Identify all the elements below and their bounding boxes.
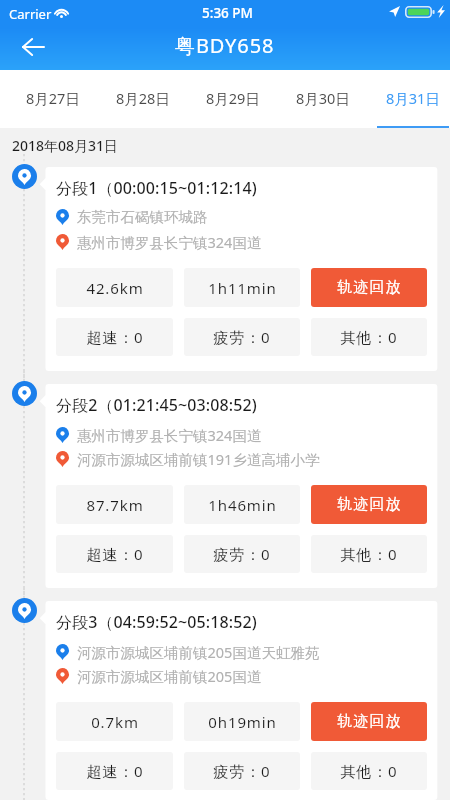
staticText: 其他：0 (340, 327, 398, 347)
staticText: 分段1（00:00:15~01:12:14) (56, 177, 257, 199)
staticText: 轨迹回放 (337, 495, 402, 514)
button[interactable]: 超速：0 (56, 752, 173, 790)
staticText: 2018年08月31日 (12, 136, 119, 155)
staticText: 超速：0 (86, 761, 144, 781)
button[interactable]: 8月31日 (368, 70, 450, 128)
button[interactable]: 其他：0 (311, 535, 427, 573)
staticText: 超速：0 (86, 544, 144, 564)
staticText: 惠州市博罗县长宁镇324国道 (77, 425, 262, 445)
staticText: Carrier (9, 5, 52, 23)
staticText: 河源市源城区埔前镇205国道天虹雅苑 (77, 642, 320, 662)
button[interactable]: 超速：0 (56, 535, 173, 573)
button[interactable]: 1h46min (184, 485, 300, 524)
staticText: 疲劳：0 (213, 761, 271, 781)
staticText: 分段3（04:59:52~05:18:52) (56, 611, 257, 633)
button[interactable]: 8月30日 (278, 70, 368, 128)
staticText: 42.6km (86, 278, 144, 298)
staticText: 0.7km (91, 712, 139, 732)
button[interactable]: 轨迹回放 (311, 702, 427, 741)
button[interactable]: 8月27日 (8, 70, 98, 128)
button[interactable]: Segment marker (12, 164, 37, 189)
button[interactable]: 超速：0 (56, 318, 173, 356)
staticText: 其他：0 (340, 544, 398, 564)
button[interactable]: 其他：0 (311, 318, 427, 356)
button[interactable]: 轨迹回放 (311, 485, 427, 524)
button[interactable]: 疲劳：0 (184, 318, 300, 356)
button[interactable]: 8月28日 (98, 70, 188, 128)
staticText: 8月30日 (296, 88, 350, 108)
staticText: 其他：0 (340, 761, 398, 781)
staticText: 1h46min (208, 495, 277, 515)
button[interactable]: Segment marker (12, 381, 37, 406)
button[interactable]: 0h19min (184, 702, 300, 741)
button[interactable]: Segment marker (12, 598, 37, 623)
button[interactable]: 87.7km (56, 485, 173, 524)
staticText: 惠州市博罗县长宁镇324国道 (77, 232, 262, 252)
staticText: 87.7km (86, 495, 144, 515)
staticText: 8月31日 (386, 88, 440, 108)
staticText: 5:36 PM (202, 4, 253, 22)
staticText: 8月27日 (26, 88, 80, 108)
staticText: 分段2（01:21:45~03:08:52) (56, 394, 257, 416)
staticText: 轨迹回放 (337, 278, 402, 297)
button[interactable]: 0.7km (56, 702, 173, 741)
button[interactable]: 42.6km (56, 268, 173, 307)
staticText: 8月29日 (206, 88, 260, 108)
staticText: 轨迹回放 (337, 712, 402, 731)
button[interactable]: 1h11min (184, 268, 300, 307)
button[interactable]: Back (15, 29, 51, 65)
button[interactable]: 其他：0 (311, 752, 427, 790)
staticText: 8月28日 (116, 88, 170, 108)
button[interactable]: 疲劳：0 (184, 752, 300, 790)
staticText: 东莞市石碣镇环城路 (77, 208, 208, 226)
staticText: 河源市源城区埔前镇191乡道高埔小学 (77, 449, 320, 469)
staticText: 粤BDY658 (175, 32, 275, 59)
button[interactable]: 8月29日 (188, 70, 278, 128)
staticText: 河源市源城区埔前镇205国道 (77, 666, 262, 686)
staticText: 超速：0 (86, 327, 144, 347)
button[interactable]: 疲劳：0 (184, 535, 300, 573)
staticText: 1h11min (208, 278, 277, 298)
staticText: 疲劳：0 (213, 327, 271, 347)
button[interactable]: 轨迹回放 (311, 268, 427, 307)
staticText: 0h19min (208, 712, 277, 732)
staticText: 疲劳：0 (213, 544, 271, 564)
